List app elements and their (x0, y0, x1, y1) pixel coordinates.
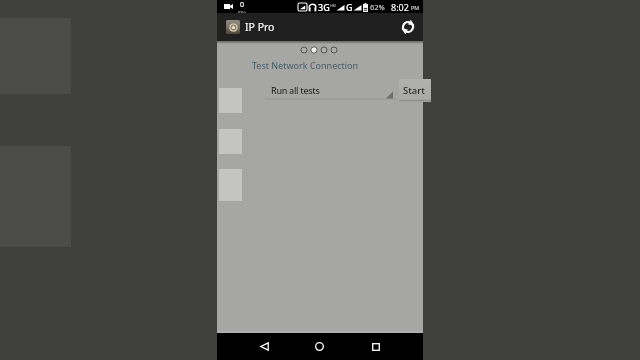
button[interactable]: Refresh (396, 15, 420, 39)
staticText: Start (403, 84, 425, 97)
staticText: IP Pro (245, 20, 275, 34)
staticText: PM (411, 4, 420, 11)
staticText: Test Network Connection (252, 59, 359, 71)
staticText: KB/s (238, 10, 247, 13)
staticText: 3G (318, 1, 330, 13)
button[interactable]: Home (305, 333, 333, 360)
button[interactable]: Run all tests (265, 79, 396, 101)
button[interactable]: Recents (362, 333, 390, 360)
staticText: 62% (370, 2, 385, 12)
button[interactable]: Back (250, 333, 278, 360)
staticText: HM (330, 3, 336, 8)
button[interactable]: Start (399, 79, 431, 102)
staticText: G (346, 1, 353, 13)
staticText: 0 (240, 0, 245, 10)
staticText: 8:02 (391, 1, 409, 13)
staticText: Run all tests (271, 84, 320, 96)
